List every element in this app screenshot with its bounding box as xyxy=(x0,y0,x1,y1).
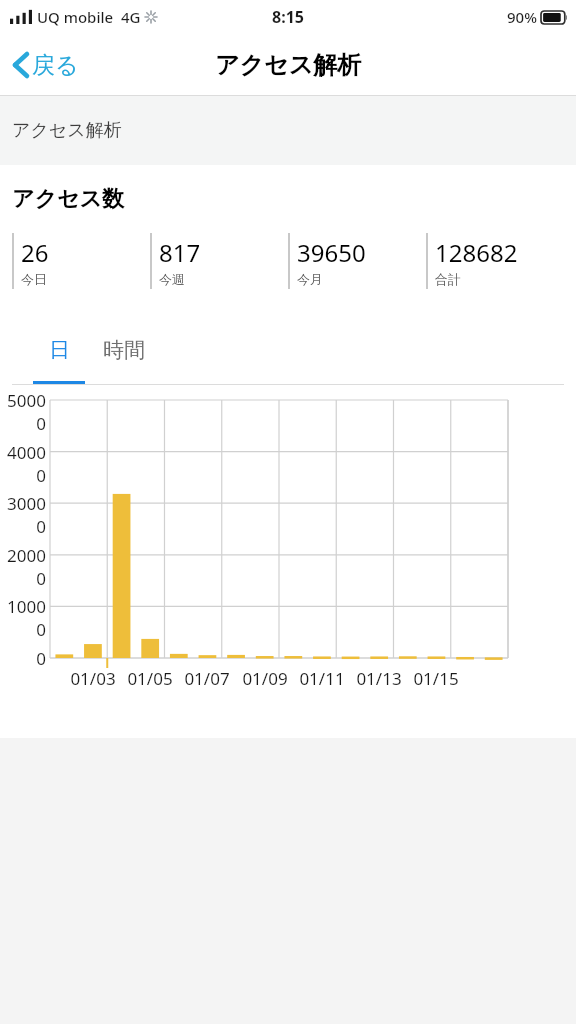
button[interactable]: 戻る xyxy=(8,44,83,86)
staticText: 10000 xyxy=(4,595,46,641)
staticText: 8:15 xyxy=(272,6,304,28)
staticText: 01/09 xyxy=(231,667,299,690)
staticText: アクセス解析 xyxy=(12,119,122,142)
staticText: 時間 xyxy=(103,337,145,363)
button[interactable]: 日 xyxy=(33,337,85,385)
staticText: 01/03 xyxy=(59,667,127,690)
staticText: 40000 xyxy=(4,441,46,487)
button[interactable]: 時間 xyxy=(95,337,153,385)
staticText: UQ mobile xyxy=(37,7,114,27)
button[interactable]: 26 xyxy=(12,233,150,289)
staticText: 0 xyxy=(4,647,46,670)
button[interactable]: 817 xyxy=(150,233,288,289)
staticText: 日 xyxy=(49,337,70,363)
staticText: 01/15 xyxy=(402,667,470,690)
staticText: 戻る xyxy=(32,51,79,80)
staticText: 今日 xyxy=(21,271,47,287)
staticText: 30000 xyxy=(4,492,46,538)
staticText: 817 xyxy=(159,236,201,269)
staticText: 39650 xyxy=(297,236,366,269)
button[interactable]: 39650 xyxy=(288,233,426,289)
staticText: 50000 xyxy=(4,389,46,435)
staticText: 26 xyxy=(21,236,49,269)
staticText: 今月 xyxy=(297,271,323,287)
staticText: アクセス解析 xyxy=(215,50,362,80)
staticText: 01/11 xyxy=(288,667,356,690)
button[interactable]: アクセス解析 xyxy=(0,96,576,165)
staticText: 01/05 xyxy=(116,667,184,690)
staticText: 01/13 xyxy=(345,667,413,690)
staticText: 今週 xyxy=(159,271,185,287)
button[interactable]: 128682 xyxy=(426,233,564,289)
staticText: 90% xyxy=(507,7,537,27)
staticText: 01/07 xyxy=(173,667,241,690)
staticText: 20000 xyxy=(4,544,46,590)
staticText: 128682 xyxy=(435,236,518,269)
staticText: 合計 xyxy=(435,271,461,287)
staticText: 4G xyxy=(121,7,141,27)
staticText: アクセス数 xyxy=(12,185,125,213)
